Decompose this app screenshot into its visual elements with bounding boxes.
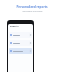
- staticText: Reports: [10, 25, 19, 28]
- staticText: Personalized reports: [16, 5, 48, 9]
- staticText: Get insights that matter: [22, 10, 43, 12]
- button[interactable]: [9, 32, 32, 38]
- button[interactable]: [9, 40, 32, 46]
- button[interactable]: [9, 48, 32, 54]
